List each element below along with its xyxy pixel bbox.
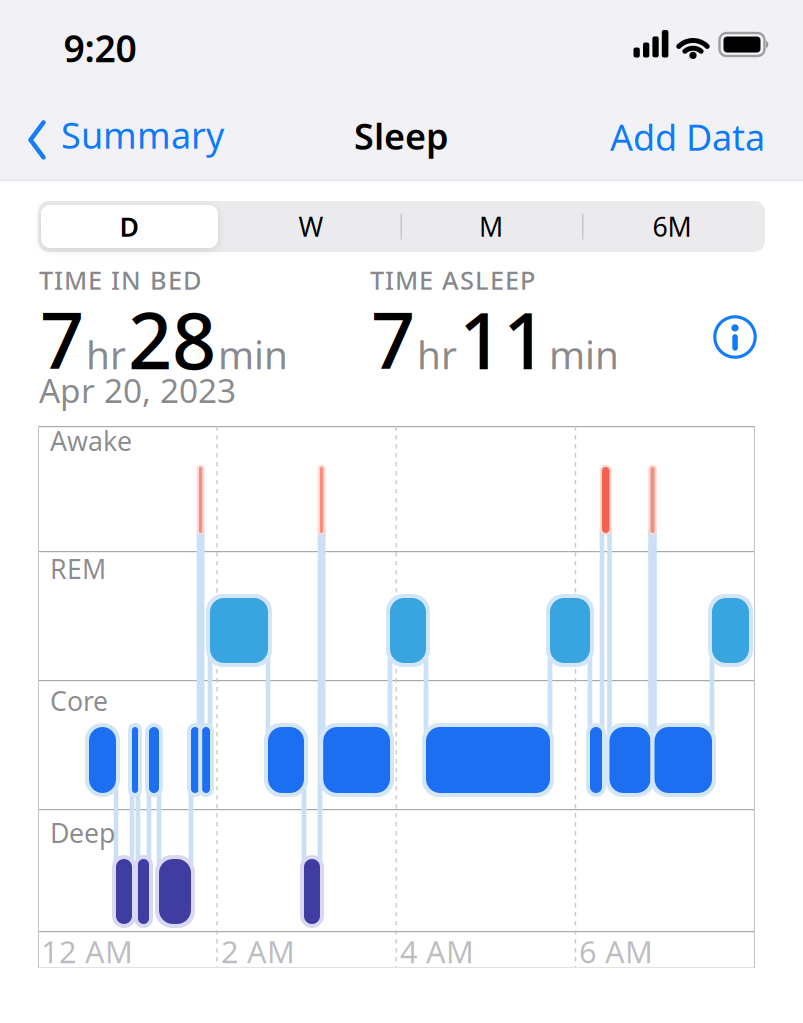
button[interactable]: D bbox=[41, 205, 218, 248]
button[interactable]: Add Data bbox=[610, 113, 765, 161]
staticText: 7 bbox=[40, 288, 84, 391]
button[interactable] bbox=[713, 315, 757, 359]
staticText: Summary bbox=[61, 111, 224, 159]
staticText: REM bbox=[50, 551, 106, 586]
staticText: 9:20 bbox=[63, 23, 136, 73]
staticText: Core bbox=[50, 683, 108, 718]
staticText: Apr 20, 2023 bbox=[39, 368, 236, 412]
staticText: min bbox=[218, 329, 288, 380]
staticText: D bbox=[119, 209, 139, 244]
staticText: Deep bbox=[50, 815, 115, 850]
staticText: M bbox=[479, 209, 503, 244]
staticText: hr bbox=[417, 329, 457, 380]
staticText: 11 bbox=[459, 288, 547, 391]
staticText: 6M bbox=[652, 209, 691, 244]
staticText: Add Data bbox=[610, 113, 765, 161]
button[interactable]: M bbox=[416, 205, 566, 248]
staticText: 7 bbox=[371, 288, 415, 391]
staticText: TIME IN BED bbox=[39, 263, 202, 297]
staticText: 12 AM bbox=[41, 931, 133, 972]
button[interactable]: Summary bbox=[28, 116, 224, 164]
button[interactable]: 6M bbox=[597, 205, 747, 248]
staticText: TIME ASLEEP bbox=[370, 263, 535, 297]
staticText: 6 AM bbox=[579, 931, 653, 972]
button[interactable]: W bbox=[236, 205, 386, 248]
staticText: Sleep bbox=[354, 112, 449, 160]
staticText: W bbox=[298, 209, 323, 244]
staticText: hr bbox=[86, 329, 126, 380]
staticText: Awake bbox=[50, 423, 132, 458]
staticText: 28 bbox=[128, 288, 216, 391]
staticText: 2 AM bbox=[221, 931, 295, 972]
staticText: 4 AM bbox=[400, 931, 474, 972]
staticText: min bbox=[549, 329, 619, 380]
